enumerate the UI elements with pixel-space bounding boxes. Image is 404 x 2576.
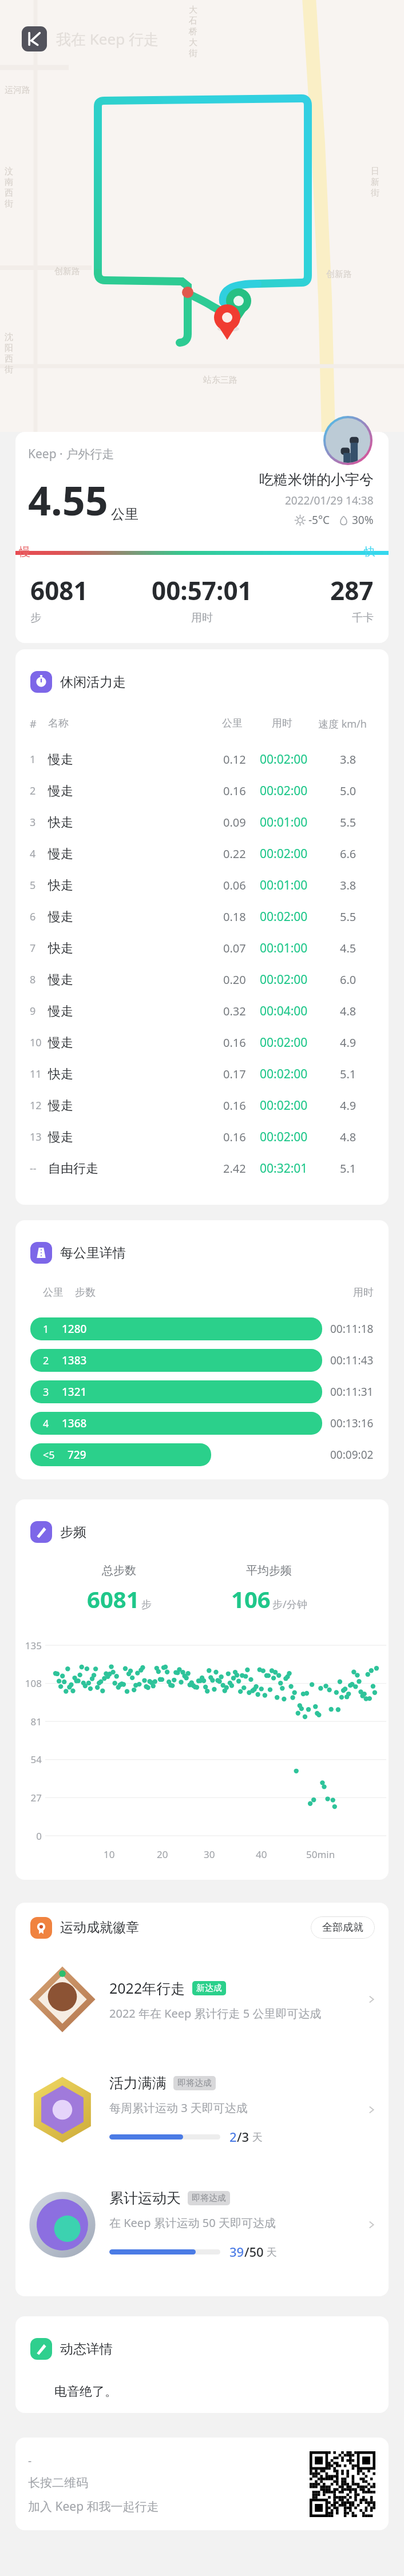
staticText: 0.09 [223,815,246,830]
staticText: 大 [189,37,197,48]
staticText: 慢走 [48,1035,73,1051]
staticText: 4.8 [340,1003,357,1019]
staticText: 每公里详情 [60,1245,126,1261]
staticText: 运河路 [5,85,30,96]
staticText: 20 [157,1848,168,1861]
staticText: 4 [43,1416,49,1431]
staticText: 快 [364,545,375,559]
staticText: 慢走 [48,783,73,799]
staticText: 2.42 [223,1161,246,1176]
staticText: 0.06 [223,878,246,893]
staticText: 729 [68,1447,86,1462]
staticText: 1368 [62,1416,87,1431]
staticText: 步 [30,611,41,625]
staticText: 81 [15,1715,42,1728]
staticText: 沈 [5,332,13,343]
button[interactable]: 全部成就 [311,1916,375,1939]
staticText: 0.16 [223,1098,246,1113]
staticText: 9 [30,1004,36,1018]
staticText: 00:02:00 [260,971,308,988]
staticText: 00:02:00 [260,1129,308,1145]
staticText: 4.55 [28,473,108,527]
staticText: 创新路 [54,266,80,277]
staticText: 40 [256,1848,267,1861]
staticText: 步/分钟 [272,1597,307,1612]
staticText: 石 [189,15,197,26]
staticText: 长按二维码 [28,2475,88,2490]
staticText: 00:11:18 [330,1321,374,1336]
staticText: /50 [244,2243,264,2260]
staticText: 西 [5,354,13,364]
staticText: 慢走 [48,1129,73,1145]
staticText: 6.6 [340,846,357,862]
button[interactable]: Keep logo [22,26,47,51]
staticText: 快走 [48,878,73,894]
staticText: 全部成就 [322,1921,363,1934]
staticText: 00:11:31 [330,1384,374,1399]
staticText: 0.17 [223,1066,246,1082]
staticText: 即将达成 [192,2193,226,2204]
staticText: 0.20 [223,972,246,987]
button[interactable]: 2022年行走 [15,1947,389,2052]
staticText: 1383 [62,1353,87,1368]
staticText: 108 [15,1677,42,1690]
button[interactable]: User avatar [323,416,373,465]
staticText: 慢走 [48,1098,73,1114]
staticText: 步数 [75,1286,96,1299]
staticText: 00:02:00 [260,1066,308,1082]
staticText: 00:02:00 [260,783,308,799]
staticText: 运动成就徽章 [60,1919,139,1936]
staticText: 4.8 [340,1129,357,1145]
staticText: 天 [249,2130,263,2144]
staticText: 54 [15,1753,42,1766]
staticText: 站东三路 [203,375,237,386]
staticText: 106 [231,1583,271,1614]
staticText: 慢 [19,545,30,559]
staticText: 5.1 [340,1161,357,1176]
staticText: -5°C [308,513,330,527]
staticText: 名称 [48,717,69,729]
staticText: 6 [30,910,36,924]
staticText: 4.9 [340,1035,357,1050]
staticText: 用时 [353,1286,374,1299]
staticText: 活力满满 [109,2074,167,2092]
staticText: 快走 [48,815,73,831]
staticText: 动态详情 [60,2341,113,2357]
staticText: 公里 [111,506,138,523]
staticText: 5.1 [340,1066,357,1082]
staticText: 街 [189,48,197,59]
staticText: 3.8 [340,752,357,767]
staticText: 30 [204,1848,215,1861]
staticText: 12 [30,1098,42,1113]
staticText: 2022/01/29 14:38 [285,493,374,508]
staticText: 4.5 [340,940,357,956]
staticText: 2 [30,784,36,798]
staticText: 0 [15,1829,42,1843]
staticText: 2022年行走 [109,1978,185,1998]
staticText: 3.8 [340,878,357,893]
staticText: 南 [5,177,13,188]
button[interactable]: 活力满满 [15,2052,389,2167]
staticText: 慢走 [48,1003,73,1019]
staticText: 慢走 [48,752,73,768]
staticText: 13 [30,1130,42,1144]
staticText: 累计运动天 [109,2189,181,2207]
staticText: 慢走 [48,972,73,988]
staticText: 00:04:00 [260,1003,308,1019]
staticText: 2 [229,2128,237,2145]
staticText: 8 [30,973,36,987]
staticText: 步 [141,1598,152,1612]
staticText: 吃糙米饼的小宇兮 [259,471,374,489]
staticText: <5 [43,1448,55,1462]
staticText: 公里 [43,1286,64,1299]
staticText: 30% [352,513,374,527]
staticText: 00:01:00 [260,814,308,831]
staticText: 00:32:01 [260,1160,308,1177]
staticText: 4 [30,847,36,861]
staticText: 0.22 [223,846,246,862]
button[interactable]: 累计运动天 [15,2167,389,2282]
staticText: 阳 [5,343,13,354]
staticText: 用时 [191,611,213,625]
staticText: 公里 [222,717,243,729]
staticText: 新 [371,177,379,188]
